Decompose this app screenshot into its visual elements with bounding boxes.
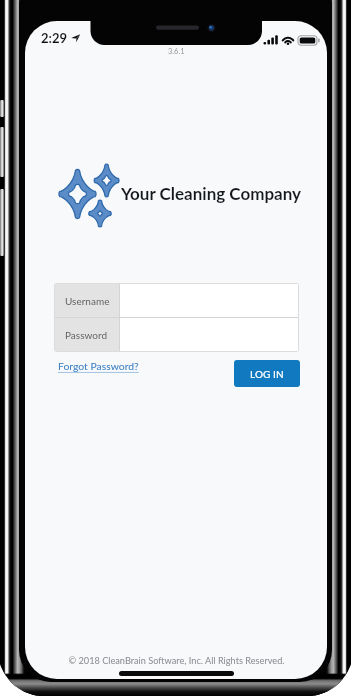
staticText: © 2018 CleanBrain Software, Inc. All Rig…: [68, 655, 285, 666]
staticText: 3.6.1: [168, 47, 185, 56]
staticText: Username: [65, 295, 110, 307]
button[interactable]: LOG IN: [234, 360, 300, 387]
staticText: 2:29: [41, 30, 67, 46]
staticText: Password: [65, 329, 107, 341]
staticText: LOG IN: [250, 368, 284, 380]
button[interactable]: Forgot Password?: [58, 360, 139, 372]
staticText: Forgot Password?: [58, 360, 139, 372]
staticText: Your Cleaning Company: [121, 183, 302, 203]
